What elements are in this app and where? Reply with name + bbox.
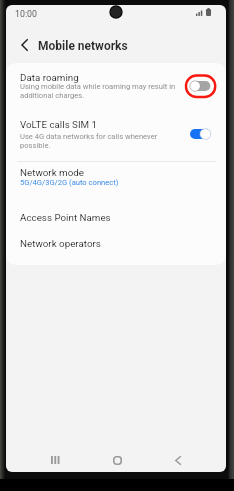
staticText: Mobile networks bbox=[38, 39, 128, 53]
button[interactable]: Recent apps bbox=[38, 450, 72, 470]
staticText: Network mode bbox=[20, 167, 84, 178]
button[interactable]: Back bbox=[161, 450, 195, 470]
button[interactable]: On bbox=[184, 123, 219, 147]
button[interactable]: Home bbox=[100, 450, 134, 470]
button[interactable]: Navigate up bbox=[15, 35, 33, 55]
staticText: Use 4G data networks for calls whenever … bbox=[20, 132, 158, 149]
button[interactable] bbox=[6, 218, 226, 245]
staticText: VoLTE calls SIM 1 bbox=[20, 119, 98, 130]
staticText: Using mobile data while roaming may resu… bbox=[20, 82, 176, 99]
staticText: 10:00 bbox=[15, 9, 37, 19]
button[interactable]: Off bbox=[184, 75, 219, 99]
button[interactable] bbox=[6, 108, 226, 158]
staticText: Access Point Names bbox=[20, 212, 111, 223]
button[interactable] bbox=[6, 162, 226, 191]
staticText: 5G/4G/3G/2G (auto connect) bbox=[20, 178, 119, 187]
staticText: Network operators bbox=[20, 238, 101, 249]
button[interactable] bbox=[6, 63, 226, 107]
staticText: Data roaming bbox=[20, 72, 79, 83]
button[interactable] bbox=[6, 191, 226, 218]
